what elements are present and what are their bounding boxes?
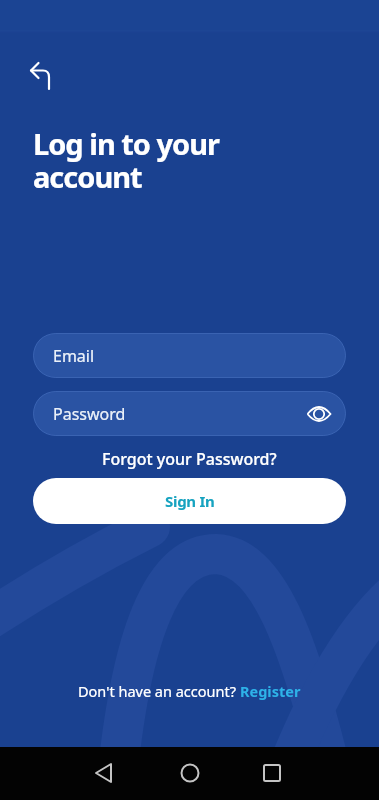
staticText: Log in to your account (33, 124, 220, 196)
button[interactable] (170, 753, 210, 793)
button[interactable] (252, 753, 292, 793)
button[interactable]: Sign In (33, 478, 346, 524)
button[interactable] (84, 753, 124, 793)
button[interactable]: Don't have an account? (78, 681, 301, 701)
button[interactable]: Forgot your Password? (102, 448, 277, 470)
button[interactable]: Password (33, 391, 346, 436)
staticText: Email (53, 345, 95, 367)
button[interactable]: Email (33, 333, 346, 378)
staticText: Password (53, 403, 126, 425)
staticText: Don't have an account? (78, 681, 240, 701)
staticText: Forgot your Password? (102, 448, 277, 470)
staticText: Sign In (165, 491, 215, 511)
staticText: Register (240, 681, 301, 701)
button[interactable] (22, 55, 62, 95)
